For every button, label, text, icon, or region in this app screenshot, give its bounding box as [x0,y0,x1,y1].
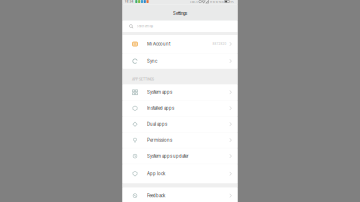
staticText: App lock [147,171,165,176]
staticText: Search settings [137,25,153,28]
button[interactable]: System apps [122,84,237,100]
button[interactable]: App lock [122,164,237,183]
button[interactable]: System apps updater [122,148,237,164]
button[interactable]: Sync [122,53,237,69]
staticText: Settings [173,11,187,16]
staticText: 47% [230,0,234,3]
staticText: Sync [147,58,157,64]
staticText: Dual apps [147,121,167,127]
staticText: Mi Account [147,41,170,47]
button[interactable]: Feedback [122,188,237,202]
staticText: System apps updater [147,153,189,159]
staticText: Permissions [147,137,172,143]
staticText: System apps [147,90,172,95]
button[interactable]: Dual apps [122,116,237,132]
staticText: 18:34 [124,0,133,3]
staticText: Feedback [147,193,165,198]
staticText: Installed apps [147,106,174,111]
staticText: 8872820 [212,42,226,46]
button[interactable]: Permissions [122,132,237,148]
button[interactable]: Mi Account [122,35,237,53]
staticText: 0.00K/s [190,0,198,3]
staticText: APP SETTINGS [132,77,154,81]
button[interactable]: Installed apps [122,100,237,116]
staticText: 29:40:48 94/25 [210,0,224,3]
